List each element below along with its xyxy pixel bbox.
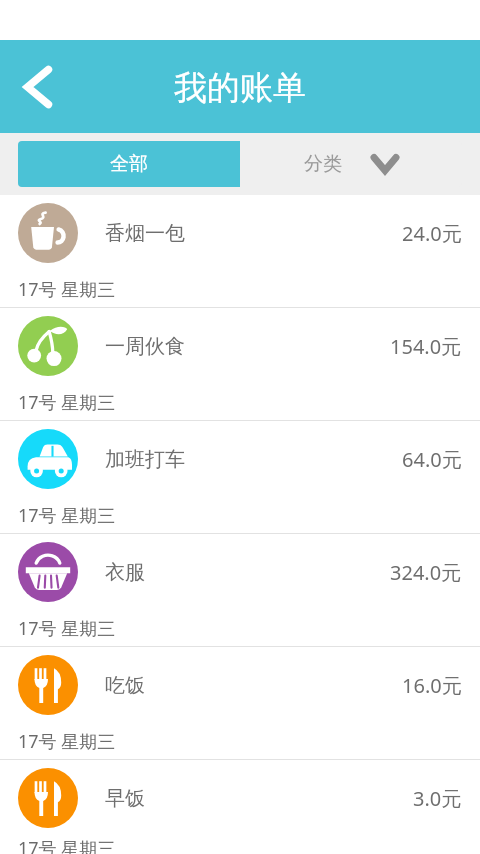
staticText: 3.0元 [413,785,462,812]
staticText: 24.0元 [402,220,462,247]
staticText: 17号 星期三 [18,503,116,528]
button[interactable]: 一周伙食 [0,308,480,384]
staticText: 324.0元 [390,559,462,586]
staticText: 香烟一包 [105,221,185,246]
staticText: 17号 星期三 [18,836,116,854]
staticText: 加班打车 [105,447,185,472]
staticText: 64.0元 [402,446,462,473]
staticText: 17号 星期三 [18,277,116,302]
staticText: 一周伙食 [105,334,185,359]
button[interactable]: 衣服 [0,534,480,610]
button[interactable]: 吃饭 [0,647,480,723]
button[interactable]: 香烟一包 [0,195,480,271]
staticText: 全部 [110,152,148,176]
button[interactable]: 分类 [240,141,462,187]
staticText: 吃饭 [105,673,145,698]
staticText: 154.0元 [390,333,462,360]
button[interactable]: 早饭 [0,760,480,836]
button[interactable]: Back [8,59,64,115]
staticText: 17号 星期三 [18,616,116,641]
staticText: 早饭 [105,786,145,811]
staticText: 衣服 [105,560,145,585]
staticText: 我的账单 [174,67,306,109]
staticText: 17号 星期三 [18,390,116,415]
button[interactable]: 加班打车 [0,421,480,497]
staticText: 16.0元 [402,672,462,699]
staticText: 17号 星期三 [18,729,116,754]
staticText: 分类 [304,152,342,176]
button[interactable]: 全部 [18,141,240,187]
